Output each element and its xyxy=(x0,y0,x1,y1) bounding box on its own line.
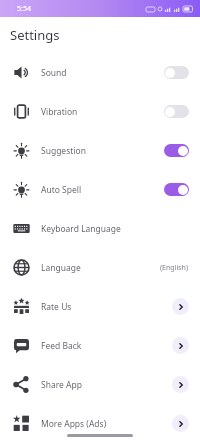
staticText: Vibration xyxy=(41,106,78,118)
button[interactable]: Open xyxy=(172,415,189,432)
button[interactable]: Off xyxy=(164,105,189,118)
staticText: Rate Us xyxy=(41,301,72,313)
button[interactable]: On xyxy=(164,144,189,157)
button[interactable]: Sound xyxy=(0,53,200,92)
button[interactable]: Feed Back xyxy=(0,326,200,365)
staticText: Settings xyxy=(10,26,60,44)
button[interactable]: Off xyxy=(164,66,189,79)
button[interactable]: More Apps (Ads) xyxy=(0,404,200,443)
staticText: 5:54 xyxy=(17,4,31,14)
button[interactable]: Open xyxy=(172,337,189,354)
button[interactable]: Share App xyxy=(0,365,200,404)
button[interactable]: Language xyxy=(0,248,200,287)
staticText: Feed Back xyxy=(41,340,82,352)
button[interactable]: Vibration xyxy=(0,92,200,131)
button[interactable]: On xyxy=(164,183,189,196)
staticText: Auto Spell xyxy=(41,184,82,196)
staticText: (English) xyxy=(160,263,189,273)
button[interactable]: Open xyxy=(172,298,189,315)
button[interactable]: Auto Spell xyxy=(0,170,200,209)
button[interactable]: Keyboard Language xyxy=(0,209,200,248)
staticText: Sound xyxy=(41,67,67,79)
button[interactable]: Rate Us xyxy=(0,287,200,326)
staticText: Suggestion xyxy=(41,145,86,157)
staticText: Keyboard Language xyxy=(41,223,121,235)
button[interactable]: Open xyxy=(172,376,189,393)
staticText: Share App xyxy=(41,379,82,391)
button[interactable]: Suggestion xyxy=(0,131,200,170)
staticText: Language xyxy=(41,262,81,274)
staticText: More Apps (Ads) xyxy=(41,418,107,430)
